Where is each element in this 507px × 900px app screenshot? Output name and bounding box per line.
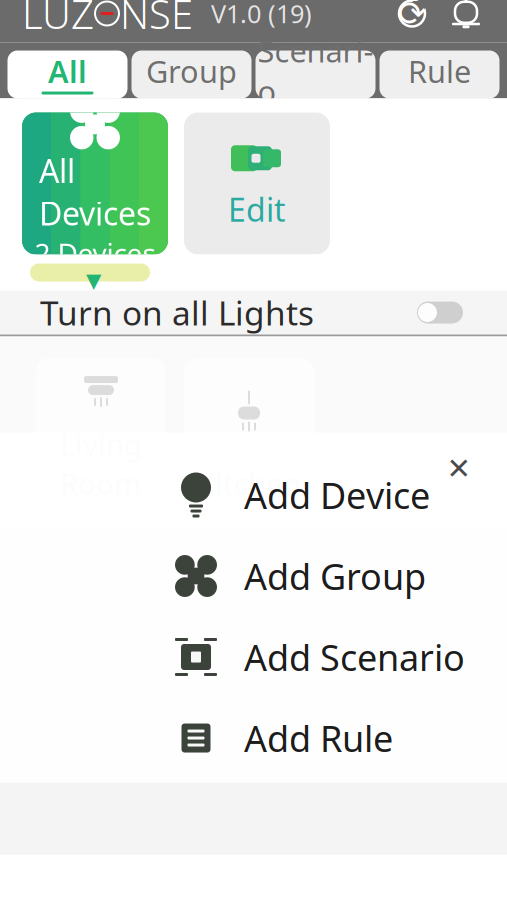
button[interactable]: Add Device: [0, 454, 507, 535]
button[interactable]: Turn on all Lights: [413, 297, 467, 327]
button[interactable]: Add Rule: [0, 697, 507, 778]
staticText: LUZ: [22, 0, 94, 40]
staticText: Edit: [228, 188, 286, 230]
staticText: Add Scenario: [244, 633, 465, 681]
button[interactable]: Add Group: [0, 535, 507, 616]
button[interactable]: Close: [427, 436, 491, 500]
staticText: Add Device: [244, 471, 430, 519]
staticText: All: [48, 51, 87, 91]
button[interactable]: Edit: [184, 112, 330, 254]
button[interactable]: Scenario: [255, 50, 375, 98]
staticText: ✕: [446, 452, 471, 485]
button[interactable]: All Devices: [22, 112, 168, 254]
staticText: Scenario: [257, 30, 373, 112]
staticText: NSE: [120, 0, 193, 40]
staticText: Turn on all Lights: [40, 290, 314, 335]
staticText: 2 Devices: [34, 234, 155, 272]
staticText: Add Group: [244, 552, 426, 600]
button[interactable]: Refresh: [385, 0, 439, 40]
button[interactable]: All: [7, 50, 127, 98]
button[interactable]: Add Scenario: [0, 616, 507, 697]
staticText: Rule: [408, 51, 471, 91]
button[interactable]: Living Room: [36, 358, 166, 528]
staticText: Add Rule: [244, 714, 393, 762]
button[interactable]: Notifications: [439, 0, 493, 40]
button[interactable]: Kitchen: [184, 358, 314, 528]
staticText: ⟳: [397, 0, 426, 33]
staticText: Kitchen: [197, 463, 301, 502]
button[interactable]: Group: [131, 50, 251, 98]
staticText: V1.0 (19): [211, 0, 312, 30]
button[interactable]: Rule: [379, 50, 499, 98]
staticText: Group: [146, 51, 237, 91]
staticText: All Devices: [39, 149, 151, 234]
staticText: ▼: [86, 269, 101, 292]
